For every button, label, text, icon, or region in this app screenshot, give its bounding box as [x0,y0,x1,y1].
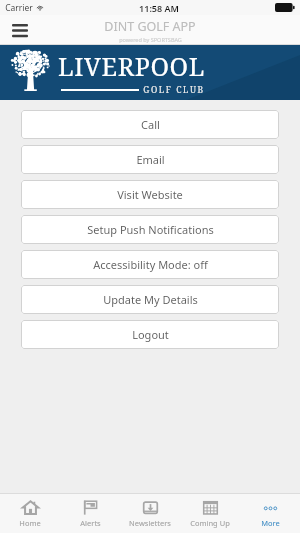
button[interactable]: Newsletters [120,494,180,533]
staticText: Update My Details [103,292,198,307]
staticText: LIVERPOOL [58,49,205,83]
staticText: Coming Up [190,518,230,528]
staticText: 11:58 AM [139,2,179,14]
staticText: Accessibility Mode: off [93,257,208,272]
button[interactable]: Alerts [60,494,120,533]
button[interactable]: Visit Website [21,180,279,209]
staticText: Visit Website [117,187,183,202]
staticText: powered by SPORTSBAG [119,36,182,43]
staticText: DINT GOLF APP [104,18,196,35]
button[interactable]: Update My Details [21,285,279,314]
button[interactable]: More [240,494,300,533]
button[interactable]: Call [21,110,279,139]
staticText: Carrier [5,2,33,14]
button[interactable]: Coming Up [180,494,240,533]
staticText: More [261,518,280,528]
staticText: Call [141,117,160,132]
button[interactable]: Accessibility Mode: off [21,250,279,279]
staticText: Email [136,152,165,167]
button[interactable]: Logout [21,320,279,349]
staticText: Alerts [80,518,101,528]
button[interactable]: Setup Push Notifications [21,215,279,244]
button[interactable]: Menu [6,16,34,44]
button[interactable]: Home [0,494,60,533]
staticText: Logout [132,327,169,342]
staticText: Home [19,518,41,528]
button[interactable]: Email [21,145,279,174]
staticText: GOLF CLUB [143,84,205,96]
staticText: Newsletters [129,518,171,528]
staticText: Setup Push Notifications [87,222,214,237]
